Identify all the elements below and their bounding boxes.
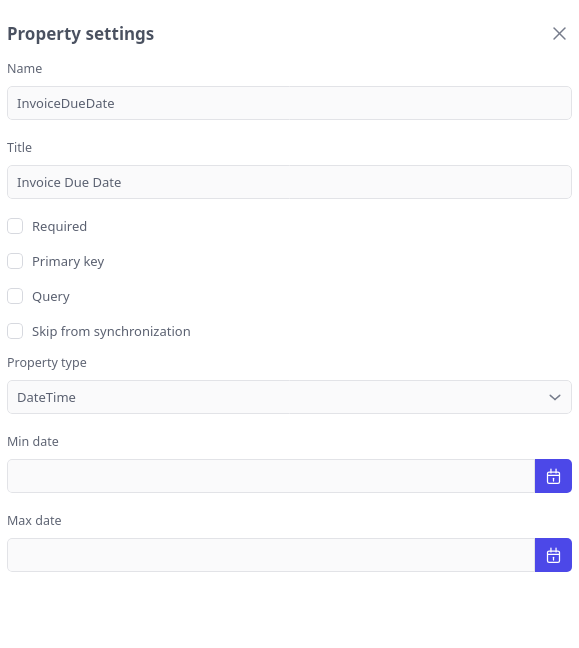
staticText: Required [32,217,88,235]
button[interactable]: DateTime [7,380,572,414]
staticText: Primary key [32,252,105,270]
staticText: Title [7,139,32,156]
staticText: Min date [7,433,59,450]
button[interactable]: Query [7,278,572,313]
staticText: Max date [7,512,62,529]
staticText: Skip from synchronization [32,322,191,340]
staticText: Invoice Due Date [17,173,122,191]
staticText: Property type [7,354,87,371]
button[interactable]: Skip from synchronization [7,313,572,348]
staticText: Property settings [7,22,155,45]
button[interactable]: InvoiceDueDate [7,86,572,120]
button[interactable] [7,459,535,493]
button[interactable] [7,538,535,572]
button[interactable]: Pick maximum date [535,538,572,572]
button[interactable]: Primary key [7,243,572,278]
button[interactable]: Required [7,208,572,243]
button[interactable]: Pick minimum date [535,459,572,493]
staticText: InvoiceDueDate [17,94,115,112]
staticText: DateTime [17,388,76,406]
button[interactable]: Close [546,20,572,46]
button[interactable]: Invoice Due Date [7,165,572,199]
staticText: Query [32,287,70,305]
staticText: Name [7,60,43,77]
